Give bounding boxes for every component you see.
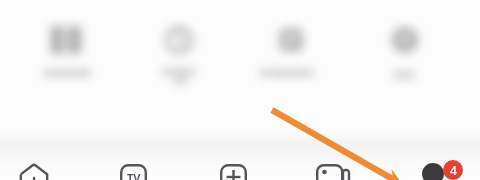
button[interactable]: Account bbox=[367, 20, 443, 86]
button[interactable]: Home bbox=[9, 140, 59, 180]
button[interactable]: Subscriptions bbox=[253, 20, 329, 86]
button[interactable]: Create bbox=[208, 140, 258, 180]
button[interactable]: Wallet bbox=[28, 20, 104, 86]
staticText: TV bbox=[127, 170, 141, 180]
button[interactable]: Live TV bbox=[108, 140, 158, 180]
button[interactable]: Profile bbox=[410, 140, 465, 180]
button[interactable]: Camera bbox=[307, 140, 357, 180]
staticText: 4 bbox=[450, 162, 457, 178]
button[interactable]: Recents bbox=[141, 20, 217, 86]
